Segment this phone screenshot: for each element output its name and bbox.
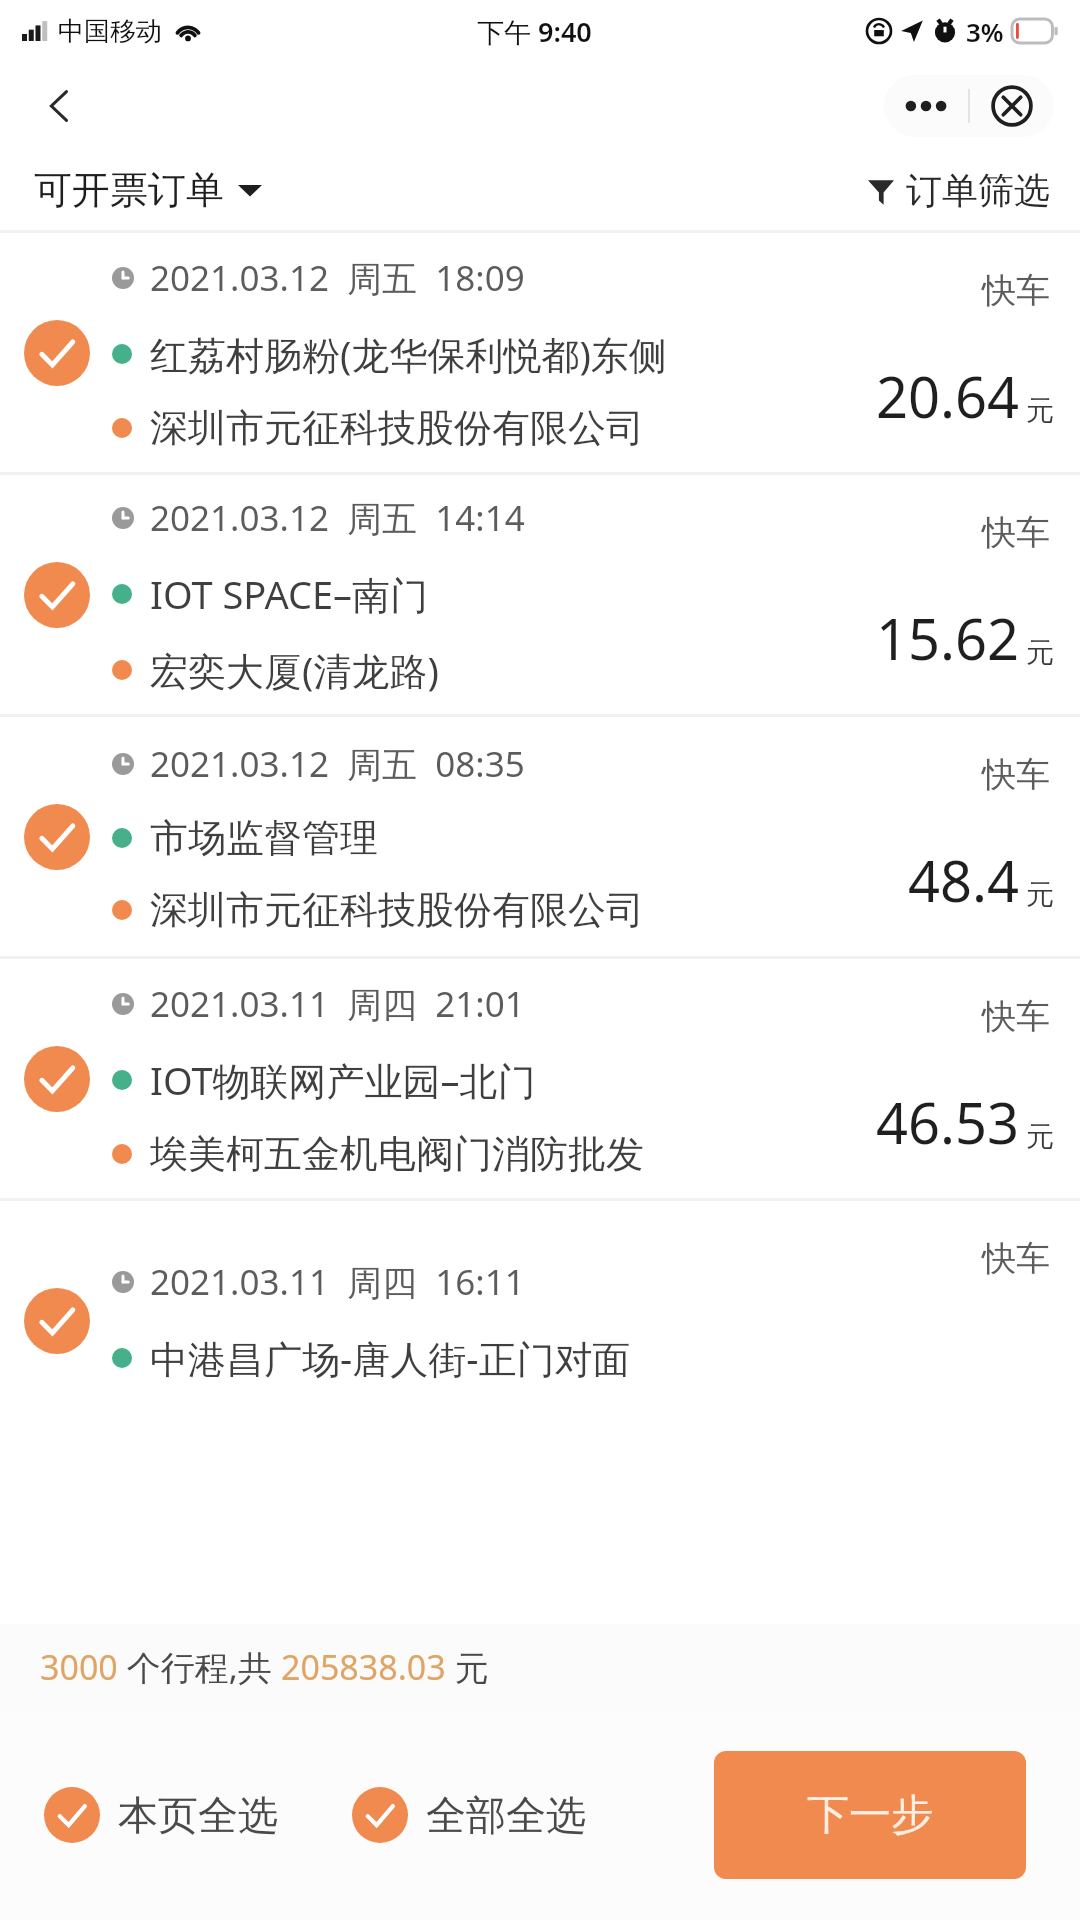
staticText: 元 xyxy=(446,1644,489,1690)
staticText: 深圳市元征科技股份有限公司 xyxy=(150,886,644,934)
staticText: 红荔村肠粉(龙华保利悦都)东侧 xyxy=(150,328,667,380)
staticText: 全部全选 xyxy=(426,1790,586,1840)
button[interactable]: 关闭 xyxy=(970,75,1054,137)
staticText: 快车 xyxy=(982,753,1050,796)
staticText: 2021.03.12 周五 18:09 xyxy=(150,254,525,302)
staticText: 快车 xyxy=(982,511,1050,554)
staticText: 48.4 xyxy=(908,842,1020,918)
staticText: 埃美柯五金机电阀门消防批发 xyxy=(150,1130,644,1178)
button[interactable]: 返回 xyxy=(28,74,92,138)
staticText: 元 xyxy=(1026,877,1054,912)
staticText: 本页全选 xyxy=(118,1790,278,1840)
staticText: 3% xyxy=(966,14,1004,49)
staticText: 元 xyxy=(1026,635,1054,670)
button[interactable]: 订单筛选 xyxy=(868,168,1050,213)
button[interactable]: 本页全选 xyxy=(44,1787,278,1843)
staticText: 可开票订单 xyxy=(34,166,224,214)
staticText: 2021.03.11 周四 21:01 xyxy=(150,980,525,1028)
staticText: 中港昌广场-唐人街-正门对面 xyxy=(150,1332,631,1384)
button[interactable]: 全部全选 xyxy=(352,1787,586,1843)
staticText: IOT SPACE–南门 xyxy=(150,568,429,620)
staticText: 2021.03.12 周五 14:14 xyxy=(150,494,525,542)
staticText: 下一步 xyxy=(807,1789,933,1842)
staticText: 订单筛选 xyxy=(906,168,1050,213)
staticText: 15.62 xyxy=(876,600,1020,676)
staticText: 中国移动 xyxy=(58,15,162,48)
staticText: 46.53 xyxy=(876,1084,1020,1160)
staticText: 快车 xyxy=(982,269,1050,312)
staticText: 市场监督管理 xyxy=(150,814,378,862)
staticText: 2021.03.12 周五 08:35 xyxy=(150,740,525,788)
staticText: 快车 xyxy=(982,1237,1050,1280)
button[interactable]: 2021.03.12 周五 18:09 xyxy=(0,233,1080,472)
staticText: 个行程,共 xyxy=(118,1644,281,1690)
staticText: 下午 9:40 xyxy=(477,13,592,50)
button[interactable]: 2021.03.12 周五 08:35 xyxy=(0,717,1080,956)
staticText: 元 xyxy=(1026,1119,1054,1154)
button[interactable]: 更多 xyxy=(884,75,968,137)
button[interactable]: 2021.03.12 周五 14:14 xyxy=(0,475,1080,714)
staticText: 元 xyxy=(1026,393,1054,428)
button[interactable]: 2021.03.11 周四 21:01 xyxy=(0,959,1080,1198)
button[interactable]: 下一步 xyxy=(714,1751,1026,1879)
button[interactable]: 2021.03.11 周四 16:11 xyxy=(0,1201,1080,1440)
staticText: 205838.03 xyxy=(281,1644,446,1690)
staticText: 2021.03.11 周四 16:11 xyxy=(150,1258,525,1306)
staticText: 深圳市元征科技股份有限公司 xyxy=(150,404,644,452)
button[interactable]: 可开票订单 xyxy=(34,166,262,214)
staticText: 3000 xyxy=(40,1644,118,1690)
staticText: IOT物联网产业园–北门 xyxy=(150,1054,536,1106)
staticText: 20.64 xyxy=(876,358,1020,434)
staticText: 宏奕大厦(清龙路) xyxy=(150,644,439,696)
staticText: 快车 xyxy=(982,995,1050,1038)
